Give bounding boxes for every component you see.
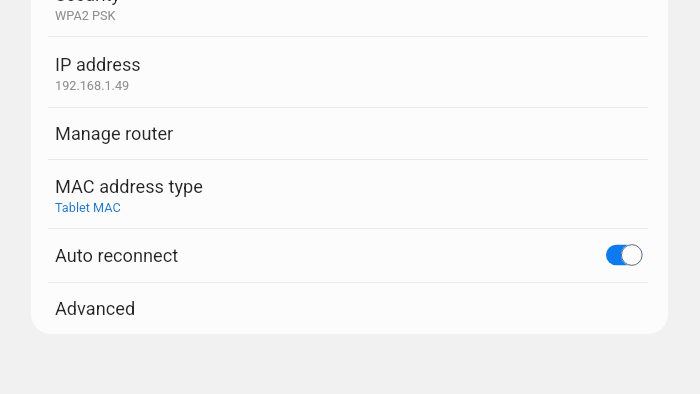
staticText: Tablet MAC <box>55 200 121 215</box>
button[interactable]: Security <box>31 0 668 36</box>
button[interactable]: Auto reconnect <box>31 228 668 282</box>
staticText: Security <box>55 0 121 5</box>
staticText: Auto reconnect <box>55 245 179 266</box>
button[interactable]: MAC address type <box>31 159 668 228</box>
staticText: IP address <box>55 54 141 75</box>
button[interactable]: IP address <box>31 36 668 107</box>
staticText: 192.168.1.49 <box>55 78 130 93</box>
staticText: Manage router <box>55 123 174 144</box>
button[interactable]: Auto reconnect, on <box>606 242 642 268</box>
button[interactable]: Manage router <box>31 107 668 159</box>
staticText: Advanced <box>55 298 136 319</box>
staticText: MAC address type <box>55 176 203 197</box>
staticText: WPA2 PSK <box>55 8 116 23</box>
button[interactable]: Advanced <box>31 282 668 334</box>
